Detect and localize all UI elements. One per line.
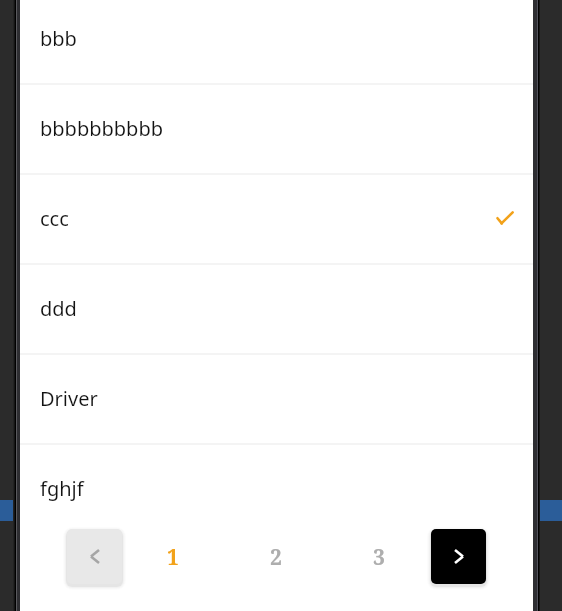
staticText: 3 (373, 543, 385, 572)
button[interactable]: 2 (256, 536, 296, 578)
staticText: ccc (40, 205, 69, 232)
button[interactable]: Driver (20, 355, 533, 445)
button[interactable]: 3 (359, 536, 399, 578)
button[interactable]: 1 (153, 536, 193, 578)
staticText: 1 (167, 543, 179, 572)
staticText: bbb (40, 25, 77, 52)
button[interactable]: fghjf (20, 445, 533, 535)
staticText: Driver (40, 385, 98, 412)
button[interactable]: ccc (20, 175, 533, 265)
button[interactable]: ddd (20, 265, 533, 355)
button[interactable]: bbbbbbbbbb (20, 85, 533, 175)
staticText: fghjf (40, 475, 84, 502)
staticText: ddd (40, 295, 77, 322)
staticText: bbbbbbbbbb (40, 115, 163, 142)
button[interactable]: Previous page (67, 529, 122, 584)
staticText: 2 (270, 543, 282, 572)
button[interactable]: Next page (431, 529, 486, 584)
button[interactable]: bbb (20, 0, 533, 85)
